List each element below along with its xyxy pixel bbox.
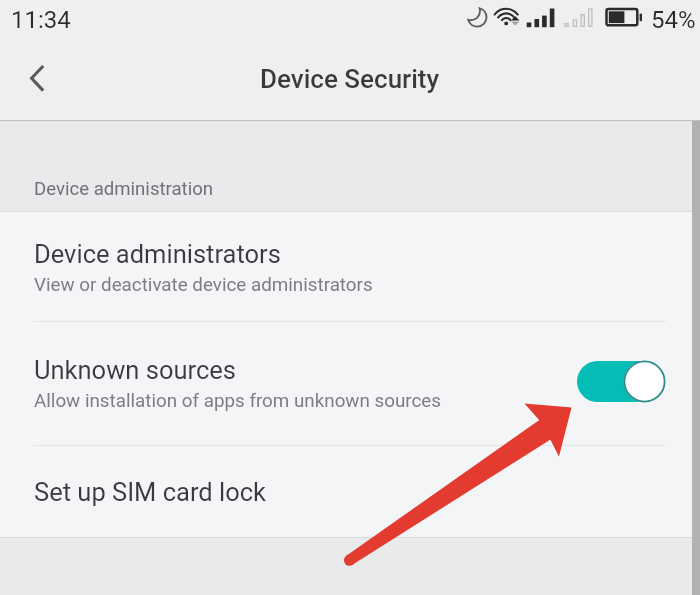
staticText: Device administrators: [34, 239, 281, 269]
staticText: Allow installation of apps from unknown …: [34, 390, 442, 412]
button[interactable]: Unknown sources toggle: [577, 361, 665, 402]
button[interactable]: Set up SIM card lock: [0, 446, 700, 538]
button[interactable]: Back: [0, 42, 76, 120]
staticText: 11:34: [11, 6, 71, 34]
staticText: View or deactivate device administrators: [34, 274, 373, 296]
button[interactable]: Device administrators: [0, 211, 700, 321]
button[interactable]: Unknown sources: [0, 322, 700, 445]
staticText: Set up SIM card lock: [34, 477, 267, 507]
staticText: Unknown sources: [34, 355, 236, 385]
staticText: Device Security: [260, 64, 440, 94]
staticText: 54%: [651, 6, 696, 34]
staticText: Device administration: [34, 178, 214, 200]
